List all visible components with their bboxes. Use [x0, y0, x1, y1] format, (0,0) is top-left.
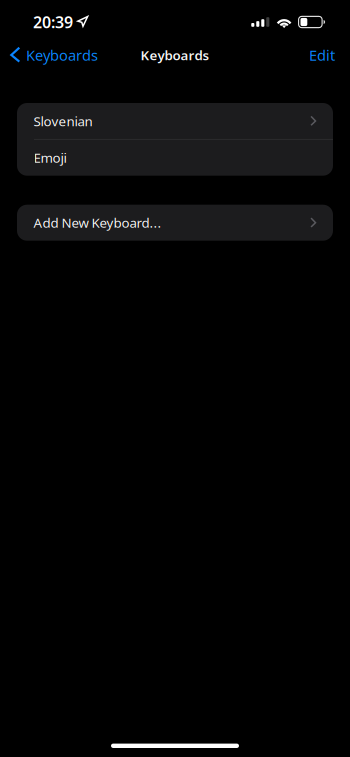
- button[interactable]: Edit: [295, 41, 350, 69]
- button[interactable]: Emoji: [17, 140, 333, 176]
- button[interactable]: Keyboards: [0, 41, 104, 69]
- staticText: Emoji: [33, 149, 66, 166]
- staticText: Keyboards: [26, 45, 98, 65]
- staticText: Slovenian: [33, 112, 92, 130]
- staticText: 20:39: [33, 11, 73, 33]
- staticText: Add New Keyboard...: [33, 214, 161, 231]
- button[interactable]: Slovenian: [17, 103, 333, 139]
- staticText: Edit: [309, 45, 335, 65]
- staticText: Keyboards: [140, 46, 209, 64]
- button[interactable]: Add New Keyboard...: [17, 205, 333, 241]
